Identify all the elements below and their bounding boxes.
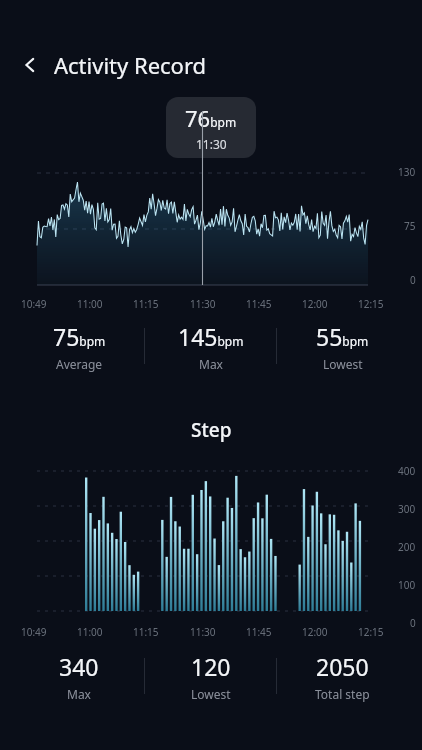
staticText: 0 bbox=[410, 273, 416, 287]
staticText: 11:15 bbox=[133, 625, 159, 639]
button[interactable]: 120 bbox=[145, 651, 276, 702]
staticText: 300 bbox=[398, 502, 416, 516]
staticText: Max bbox=[199, 356, 223, 372]
staticText: Total step bbox=[315, 686, 370, 702]
staticText: 400 bbox=[398, 464, 416, 478]
staticText: 12:15 bbox=[358, 625, 384, 639]
staticText: Lowest bbox=[323, 356, 363, 372]
button[interactable]: 2050 bbox=[277, 651, 408, 702]
staticText: 11:30 bbox=[190, 297, 216, 311]
staticText: 200 bbox=[398, 540, 416, 554]
button[interactable]: 75bpm bbox=[14, 321, 144, 372]
staticText: 2050 bbox=[316, 651, 369, 682]
staticText: 10:49 bbox=[21, 625, 47, 639]
staticText: Max bbox=[67, 686, 91, 702]
staticText: 12:00 bbox=[302, 297, 328, 311]
staticText: 11:15 bbox=[133, 297, 159, 311]
button[interactable]: 145bpm bbox=[145, 321, 276, 372]
staticText: Lowest bbox=[191, 686, 231, 702]
staticText: 11:45 bbox=[246, 625, 272, 639]
staticText: 11:45 bbox=[246, 297, 272, 311]
staticText: 10:49 bbox=[21, 297, 47, 311]
staticText: 100 bbox=[398, 578, 416, 592]
staticText: Activity Record bbox=[54, 50, 207, 80]
staticText: 55bpm bbox=[316, 321, 369, 352]
staticText: 12:15 bbox=[358, 297, 384, 311]
staticText: 11:30 bbox=[190, 625, 216, 639]
button[interactable]: Back bbox=[16, 51, 44, 79]
staticText: 0 bbox=[410, 616, 416, 630]
staticText: 12:00 bbox=[302, 625, 328, 639]
staticText: Average bbox=[56, 356, 103, 372]
staticText: 75 bbox=[404, 219, 416, 233]
staticText: 145bpm bbox=[178, 321, 244, 352]
button[interactable]: 340 bbox=[14, 651, 144, 702]
staticText: 130 bbox=[398, 165, 416, 179]
staticText: 120 bbox=[191, 651, 231, 682]
staticText: 76bpm bbox=[185, 103, 237, 133]
staticText: 340 bbox=[59, 651, 99, 682]
staticText: 11:00 bbox=[77, 297, 103, 311]
button[interactable]: 55bpm bbox=[277, 321, 408, 372]
staticText: 75bpm bbox=[53, 321, 106, 352]
button[interactable]: 76bpm bbox=[166, 97, 256, 158]
staticText: Step bbox=[191, 417, 232, 443]
staticText: 11:00 bbox=[77, 625, 103, 639]
staticText: 11:30 bbox=[196, 136, 227, 152]
